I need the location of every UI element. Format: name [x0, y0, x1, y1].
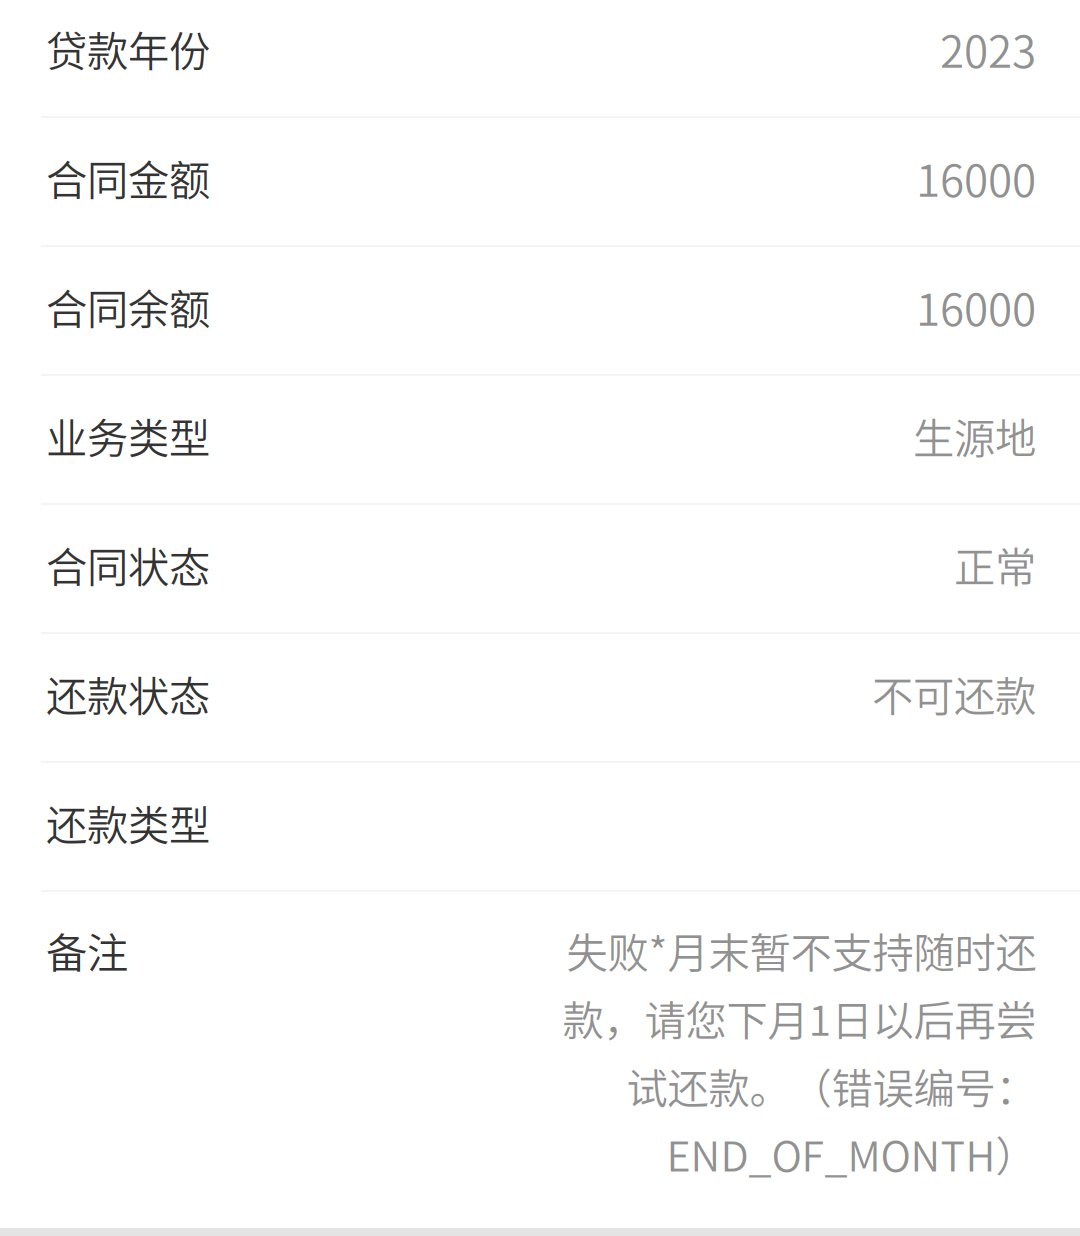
staticText: 贷款年份	[46, 19, 210, 78]
staticText: 还款状态	[46, 664, 210, 723]
staticText: 还款类型	[46, 793, 210, 852]
button[interactable]: 备注	[0, 892, 1080, 1183]
staticText: 业务类型	[46, 406, 210, 465]
staticText: 正常	[954, 535, 1036, 594]
staticText: 合同状态	[46, 535, 210, 594]
staticText: 合同金额	[46, 148, 210, 207]
button[interactable]: 合同金额	[0, 118, 1080, 245]
button[interactable]: 合同余额	[0, 247, 1080, 374]
staticText: 合同余额	[46, 277, 210, 336]
staticText: 备注	[46, 920, 128, 980]
button[interactable]: 贷款年份	[0, 0, 1080, 116]
button[interactable]: 还款类型	[0, 763, 1080, 890]
staticText: 16000	[916, 275, 1036, 338]
staticText: 16000	[916, 146, 1036, 209]
staticText: 生源地	[913, 406, 1036, 465]
staticText: 不可还款	[872, 664, 1036, 723]
button[interactable]: 还款状态	[0, 634, 1080, 761]
staticText: 2023	[940, 17, 1036, 80]
staticText: 失败*月末暂不支持随时还款，请您下月1日以后再尝试还款。（错误编号：END_OF…	[562, 920, 1036, 1183]
button[interactable]: 业务类型	[0, 376, 1080, 503]
button[interactable]: 合同状态	[0, 505, 1080, 632]
